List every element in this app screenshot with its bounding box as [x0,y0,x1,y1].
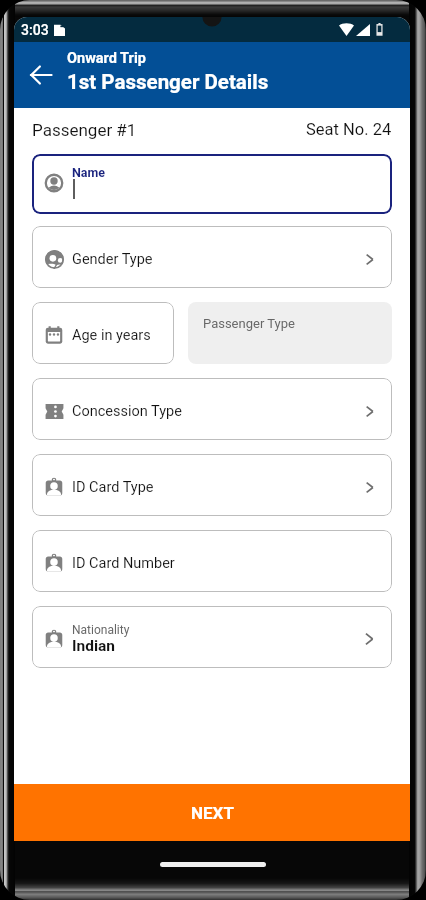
staticText: 3:03 [21,22,49,38]
staticText: Passenger Type [203,316,295,331]
button[interactable]: Concession Type [32,378,392,440]
button[interactable]: ID Card Type [32,454,392,516]
button[interactable]: Nationality [32,606,392,668]
staticText: ID Card Type [72,479,154,496]
staticText: Onward Trip [67,50,146,67]
staticText: Seat No. 24 [306,120,392,139]
staticText: Gender Type [72,251,153,268]
button[interactable]: Name [32,154,392,214]
button[interactable]: Back [19,53,63,97]
button[interactable]: Gender Type [32,226,392,288]
button[interactable]: Age in years [32,302,174,364]
staticText: Age in years [72,327,151,344]
staticText: Nationality [72,623,130,637]
button[interactable]: Passenger Type [188,302,392,364]
button[interactable]: NEXT [14,784,410,841]
staticText: Concession Type [72,403,182,420]
button[interactable]: ID Card Number [32,530,392,592]
staticText: NEXT [191,803,234,823]
staticText: Indian [72,637,116,655]
staticText: 1st Passenger Details [67,70,269,94]
staticText: Name [72,165,106,180]
staticText: Passenger #1 [32,120,137,140]
staticText: ID Card Number [72,555,175,572]
